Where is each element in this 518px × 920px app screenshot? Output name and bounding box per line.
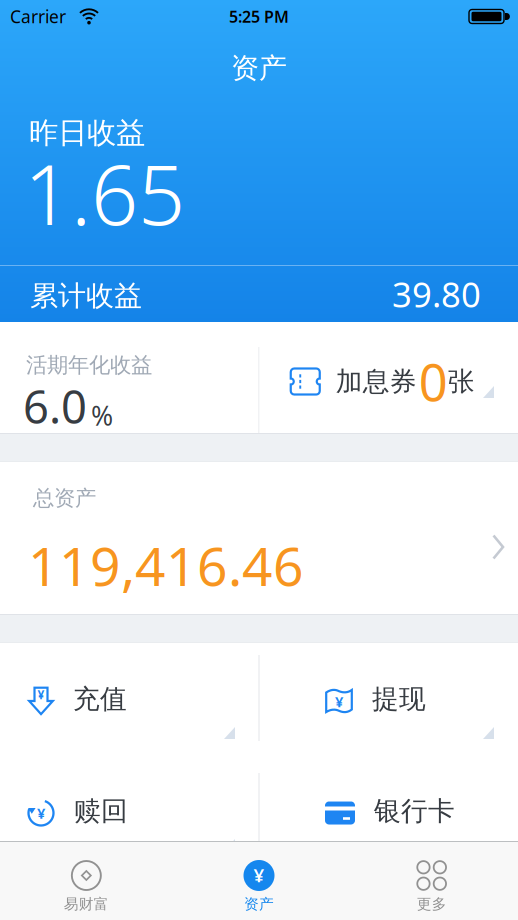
staticText: 119,416.46 <box>28 530 304 601</box>
button[interactable]: ¥ <box>259 643 518 755</box>
staticText: ¥ <box>37 803 45 823</box>
button[interactable]: 银行卡 <box>259 755 518 867</box>
staticText: 资产 <box>244 895 274 913</box>
staticText: 更多 <box>417 895 447 913</box>
staticText: ¥ <box>253 863 264 887</box>
staticText: 昨日收益 <box>29 115 145 151</box>
button[interactable]: ¥ <box>0 755 259 867</box>
button[interactable]: 加息券 <box>259 322 518 433</box>
staticText: % <box>91 398 113 433</box>
staticText: 张 <box>448 365 475 398</box>
staticText: 资产 <box>231 51 287 85</box>
staticText: ¥ <box>335 692 343 711</box>
staticText: 1.65 <box>24 138 185 248</box>
staticText: 6.0 <box>23 376 87 436</box>
staticText: 提现 <box>372 683 426 715</box>
staticText: 活期年化收益 <box>26 352 152 378</box>
button[interactable]: 总资产 <box>0 462 518 614</box>
button[interactable]: ¥ <box>173 842 345 913</box>
button[interactable]: 易财富 <box>0 842 173 913</box>
staticText: 39.80 <box>392 271 481 317</box>
staticText: 总资产 <box>33 485 96 511</box>
staticText: 赎回 <box>74 795 128 827</box>
staticText: ¥ <box>37 686 44 702</box>
staticText: 充值 <box>73 683 127 715</box>
staticText: 银行卡 <box>374 795 455 827</box>
button[interactable]: 更多 <box>345 842 518 913</box>
staticText: 易财富 <box>64 895 109 913</box>
staticText: 0 <box>419 348 448 415</box>
staticText: 5:25 PM <box>229 6 289 27</box>
staticText: Carrier <box>10 5 66 28</box>
staticText: 加息券 <box>336 365 417 398</box>
button[interactable]: ¥ <box>0 643 259 755</box>
staticText: 累计收益 <box>30 279 142 313</box>
